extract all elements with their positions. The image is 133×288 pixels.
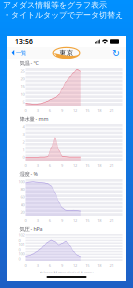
staticText: 15 (20, 84, 24, 89)
staticText: 6 (49, 218, 51, 223)
staticText: 12 (73, 108, 77, 113)
staticText: 21 (109, 108, 113, 113)
staticText: 降水量 - mm (19, 115, 48, 123)
staticText: 3 (37, 218, 39, 223)
staticText: 0 (24, 108, 26, 113)
staticText: 一覧 (16, 50, 26, 56)
staticText: 9 (61, 218, 63, 223)
staticText: 15 (85, 108, 89, 113)
staticText: 0 (22, 154, 24, 160)
staticText: © Japan Meteorological Agency (39, 270, 93, 276)
staticText: 60 (20, 194, 24, 200)
staticText: 13:56 (15, 37, 33, 46)
staticText: 1000 (18, 251, 24, 262)
staticText: ↻ (112, 48, 120, 58)
staticText: 21 (109, 218, 113, 223)
staticText: 0 (24, 218, 26, 223)
staticText: ・タイトルタップでデータ切替え (3, 10, 123, 20)
staticText: 9 (61, 108, 63, 113)
button[interactable]: Reload (112, 47, 126, 58)
staticText: 20 (20, 76, 24, 81)
staticText: 気温 - ℃ (19, 59, 38, 67)
staticText: 6 (49, 163, 51, 168)
staticText: 9 (61, 163, 63, 168)
staticText: 1010 (18, 242, 24, 252)
staticText: 18 (97, 163, 101, 168)
staticText: 25 (20, 68, 24, 73)
staticText: 3 (37, 108, 39, 113)
staticText: 10 (20, 92, 24, 97)
staticText: 12 (73, 163, 77, 168)
staticText: 3 (22, 132, 24, 137)
staticText: 東京 (59, 49, 73, 57)
staticText: 15 (85, 163, 89, 168)
staticText: 2 (22, 139, 24, 145)
staticText: 40 (20, 202, 24, 207)
staticText: 12 (73, 218, 77, 223)
staticText: 5 (22, 99, 24, 105)
staticText: 0 (24, 163, 26, 168)
staticText: 20 (20, 209, 24, 215)
staticText: 3 (37, 163, 39, 168)
staticText: 15 (85, 263, 89, 268)
staticText: 12 (73, 263, 77, 268)
staticText: 18 (97, 108, 101, 113)
staticText: 21 (109, 263, 113, 268)
staticText: 気圧 - hPa (19, 225, 42, 233)
staticText: 100 (18, 179, 24, 184)
staticText: 18 (97, 263, 101, 268)
staticText: 21 (109, 163, 113, 168)
staticText: 6 (49, 108, 51, 113)
staticText: 1 (22, 147, 24, 152)
button[interactable]: 一覧 (7, 47, 26, 58)
staticText: 80 (20, 187, 24, 192)
button[interactable]: 東京 (52, 47, 80, 59)
staticText: 9 (61, 263, 63, 268)
staticText: 6 (49, 263, 51, 268)
staticText: 1020 (18, 232, 24, 243)
staticText: 湿度 - % (19, 170, 37, 178)
staticText: 3 (37, 263, 39, 268)
staticText: 4 (22, 124, 24, 129)
staticText: アメダス情報等をグラフ表示 (3, 0, 107, 10)
staticText: 0 (24, 263, 26, 268)
staticText: 18 (97, 218, 101, 223)
staticText: 15 (85, 218, 89, 223)
